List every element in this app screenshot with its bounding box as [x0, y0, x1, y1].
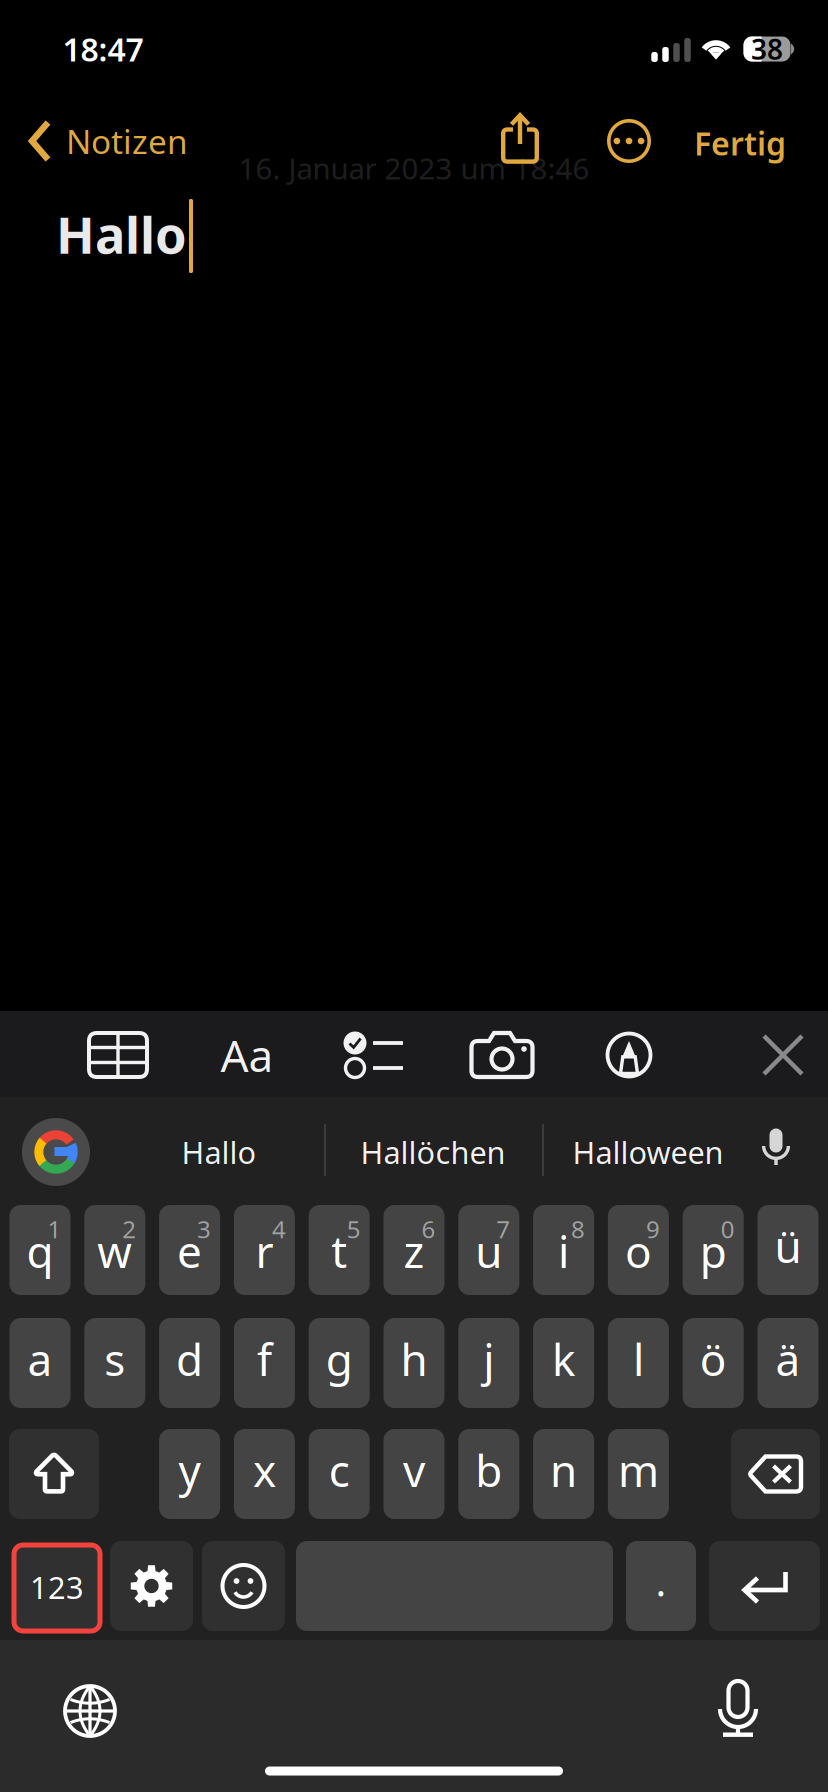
- button[interactable]: t: [309, 1205, 370, 1295]
- button[interactable]: Spracheingabe: [739, 1105, 813, 1195]
- button[interactable]: Tabelle: [66, 1012, 170, 1098]
- staticText: l: [633, 1330, 644, 1388]
- staticText: j: [483, 1330, 494, 1388]
- staticText: k: [552, 1330, 575, 1388]
- button[interactable]: i: [533, 1205, 594, 1295]
- button[interactable]: Sprache wechseln: [30, 1656, 150, 1766]
- button[interactable]: w: [84, 1205, 145, 1295]
- button[interactable]: Tastatur ausblenden: [738, 1012, 828, 1098]
- button[interactable]: d: [159, 1318, 220, 1408]
- button[interactable]: l: [608, 1318, 669, 1408]
- button[interactable]: b: [458, 1429, 519, 1519]
- staticText: 0: [721, 1213, 735, 1245]
- staticText: q: [26, 1222, 53, 1280]
- staticText: Notizen: [66, 119, 188, 163]
- staticText: r: [255, 1222, 273, 1280]
- staticText: s: [104, 1330, 125, 1388]
- staticText: 2: [122, 1213, 136, 1245]
- button[interactable]: n: [533, 1429, 594, 1519]
- staticText: f: [257, 1330, 272, 1388]
- staticText: g: [326, 1330, 353, 1388]
- staticText: 5: [347, 1213, 361, 1245]
- staticText: v: [403, 1441, 425, 1499]
- button[interactable]: u: [458, 1205, 519, 1295]
- button[interactable]: Markierung: [577, 1012, 681, 1098]
- staticText: Hallo: [181, 1132, 256, 1172]
- staticText: u: [475, 1222, 502, 1280]
- button[interactable]: k: [533, 1318, 594, 1408]
- staticText: 16. Januar 2023 um 18:46: [238, 148, 589, 187]
- button[interactable]: e: [159, 1205, 220, 1295]
- staticText: p: [700, 1222, 727, 1280]
- button[interactable]: Umschalttaste: [9, 1429, 99, 1519]
- button[interactable]: x: [234, 1429, 295, 1519]
- staticText: Aa: [220, 1026, 273, 1084]
- button[interactable]: a: [9, 1318, 70, 1408]
- button[interactable]: h: [383, 1318, 444, 1408]
- button[interactable]: Notizen: [18, 103, 218, 179]
- button[interactable]: Kamera: [450, 1012, 554, 1098]
- staticText: o: [625, 1222, 652, 1280]
- staticText: t: [331, 1222, 347, 1280]
- staticText: .: [655, 1554, 666, 1607]
- button[interactable]: Aa: [195, 1012, 299, 1098]
- button[interactable]: s: [84, 1318, 145, 1408]
- button[interactable]: 123: [14, 1545, 100, 1631]
- button[interactable]: Spracheingabe: [678, 1654, 798, 1764]
- staticText: d: [176, 1330, 203, 1388]
- button[interactable]: z: [383, 1205, 444, 1295]
- button[interactable]: p: [683, 1205, 744, 1295]
- button[interactable]: ü: [757, 1205, 818, 1295]
- button[interactable]: f: [234, 1318, 295, 1408]
- button[interactable]: Weitere Optionen: [590, 103, 668, 179]
- button[interactable]: j: [458, 1318, 519, 1408]
- button[interactable]: Hallo: [119, 1107, 319, 1197]
- staticText: 3: [197, 1213, 211, 1245]
- button[interactable]: c: [309, 1429, 370, 1519]
- staticText: ä: [775, 1330, 800, 1388]
- staticText: 1: [47, 1213, 61, 1245]
- staticText: x: [253, 1441, 276, 1499]
- button[interactable]: Checkliste: [322, 1012, 426, 1098]
- button[interactable]: Hallöchen: [330, 1107, 535, 1197]
- button[interactable]: g: [309, 1318, 370, 1408]
- staticText: 6: [421, 1213, 435, 1245]
- button[interactable]: .: [626, 1541, 696, 1631]
- staticText: y: [179, 1441, 201, 1499]
- button[interactable]: y: [159, 1429, 220, 1519]
- staticText: i: [558, 1222, 569, 1280]
- button[interactable]: o: [608, 1205, 669, 1295]
- staticText: ö: [700, 1330, 727, 1388]
- button[interactable]: Fertig: [670, 105, 810, 181]
- button[interactable]: Löschen: [731, 1429, 820, 1519]
- button[interactable]: ö: [683, 1318, 744, 1408]
- staticText: 9: [646, 1213, 660, 1245]
- staticText: ü: [774, 1217, 801, 1275]
- button[interactable]: v: [383, 1429, 444, 1519]
- staticText: 38: [751, 30, 783, 68]
- staticText: n: [550, 1441, 577, 1499]
- staticText: Fertig: [694, 122, 786, 164]
- button[interactable]: Teilen: [481, 100, 559, 176]
- button[interactable]: r: [234, 1205, 295, 1295]
- staticText: c: [329, 1441, 350, 1499]
- button[interactable]: ä: [757, 1318, 818, 1408]
- staticText: b: [475, 1441, 502, 1499]
- staticText: e: [177, 1222, 202, 1280]
- button[interactable]: Google: [6, 1107, 106, 1197]
- button[interactable]: q: [9, 1205, 70, 1295]
- staticText: 8: [571, 1213, 585, 1245]
- staticText: m: [618, 1441, 659, 1499]
- button[interactable]: Eingabetaste: [709, 1541, 820, 1631]
- staticText: 123: [30, 1567, 84, 1607]
- button[interactable]: m: [608, 1429, 669, 1519]
- button[interactable]: Emoji: [202, 1541, 285, 1631]
- staticText: Hallöchen: [360, 1132, 505, 1172]
- button[interactable]: Halloween: [548, 1107, 748, 1197]
- staticText: 7: [496, 1213, 510, 1245]
- staticText: Halloween: [572, 1132, 723, 1172]
- button[interactable]: Einstellungen: [110, 1541, 193, 1631]
- staticText: h: [400, 1330, 427, 1388]
- staticText: z: [403, 1222, 424, 1280]
